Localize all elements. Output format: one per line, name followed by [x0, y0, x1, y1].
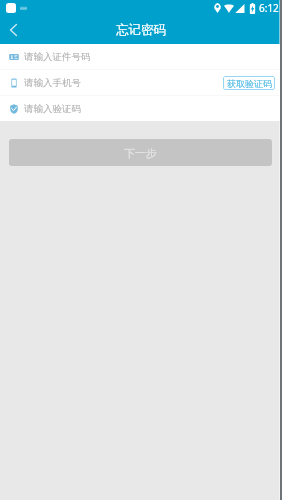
staticText: 下一步: [124, 146, 157, 160]
button[interactable]: 请输入证件号码: [9, 44, 275, 69]
staticText: 获取验证码: [227, 78, 272, 89]
staticText: 请输入手机号: [24, 77, 81, 89]
button[interactable]: 请输入验证码: [9, 96, 275, 121]
button[interactable]: 请输入手机号: [9, 70, 223, 95]
staticText: 请输入验证码: [24, 103, 81, 115]
staticText: 请输入证件号码: [24, 51, 91, 63]
button[interactable]: 获取验证码: [223, 76, 275, 90]
staticText: 忘记密码: [116, 22, 166, 38]
button[interactable]: Back: [0, 16, 26, 44]
staticText: 6:12: [259, 1, 279, 15]
